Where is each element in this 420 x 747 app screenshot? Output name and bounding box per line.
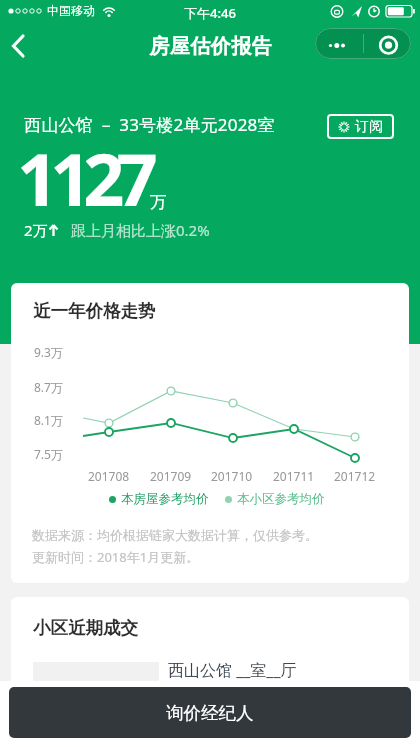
staticText: 8.7万 [34, 379, 63, 395]
staticText: 本房屋参考均价 [121, 491, 209, 507]
staticText: 201709 [150, 468, 192, 484]
staticText: 201710 [211, 468, 253, 484]
staticText: 201712 [334, 468, 376, 484]
staticText: 201711 [273, 468, 315, 484]
staticText: 本小区参考均价 [237, 491, 325, 507]
staticText: 9.3万 [34, 344, 63, 360]
staticText: 数据来源：均价根据链家大数据计算，仅供参考。 [32, 527, 318, 543]
button[interactable]: 询价经纪人 [9, 687, 411, 738]
button[interactable] [315, 28, 411, 59]
staticText: 询价经纪人 [166, 702, 254, 724]
staticText: 7.5万 [34, 446, 63, 462]
staticText: 2万 [24, 220, 48, 240]
staticText: 万 [150, 192, 167, 213]
staticText: 下午4:46 [184, 4, 236, 22]
staticText: 近一年价格走势 [33, 300, 156, 322]
staticText: 8.1万 [34, 412, 63, 428]
staticText: 订阅 [355, 118, 383, 136]
staticText: 跟上月相比上涨0.2% [71, 220, 210, 240]
button[interactable] [8, 32, 30, 60]
staticText: 中国移动 [47, 3, 95, 18]
staticText: 西山公馆 __室__厅 [168, 659, 297, 681]
staticText: 1127 [17, 129, 150, 227]
staticText: 小区近期成交 [33, 617, 138, 639]
staticText: 房屋估价报告 [149, 34, 272, 59]
staticText: 西山公馆 － 33号楼2单元2028室 [24, 113, 275, 136]
staticText: 201708 [88, 468, 130, 484]
staticText: 更新时间：2018年1月更新。 [32, 548, 200, 566]
button[interactable]: 订阅 [327, 114, 394, 139]
